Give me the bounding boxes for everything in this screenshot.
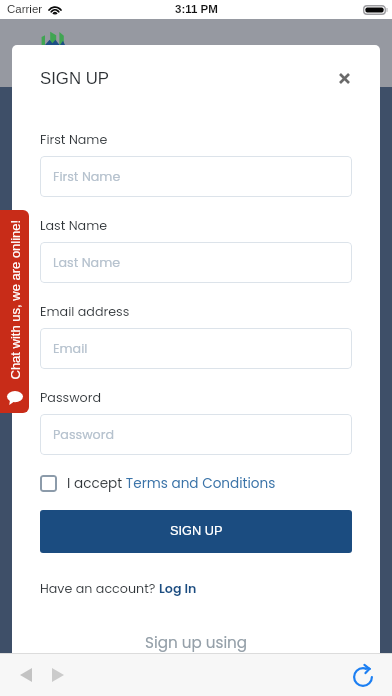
staticText: SIGN UP	[170, 523, 223, 537]
staticText: Password	[40, 389, 102, 407]
staticText: Carrier	[7, 3, 43, 16]
button[interactable]: Log In	[159, 580, 197, 598]
button[interactable]: Email	[40, 328, 352, 369]
staticText: Have an account?	[40, 580, 159, 598]
staticText: Last Name	[53, 254, 121, 272]
staticText: First Name	[40, 131, 108, 149]
staticText: SIGN UP	[40, 69, 110, 88]
staticText: I accept Terms and Conditions	[67, 474, 276, 493]
staticText: Password	[53, 426, 115, 444]
button[interactable]: First Name	[40, 156, 352, 197]
button[interactable]: Close	[329, 63, 359, 93]
button[interactable]: I accept Terms and Conditions	[40, 471, 352, 496]
staticText: Last Name	[40, 217, 108, 235]
staticText: Chat with us, we are online!	[7, 219, 22, 379]
staticText: Email address	[40, 303, 130, 321]
staticText: 3:11 PM	[175, 3, 218, 16]
button[interactable]: Forward	[42, 659, 74, 691]
button[interactable]: Reload	[345, 657, 381, 693]
staticText: Email	[53, 340, 88, 358]
button[interactable]: SIGN UP	[40, 510, 352, 553]
button[interactable]: Password	[40, 414, 352, 455]
staticText: Sign up using	[145, 632, 248, 653]
button[interactable]: Last Name	[40, 242, 352, 283]
button[interactable]: Chat with us, we are online!	[0, 210, 29, 413]
staticText: First Name	[53, 168, 121, 186]
button[interactable]: Back	[10, 659, 42, 691]
